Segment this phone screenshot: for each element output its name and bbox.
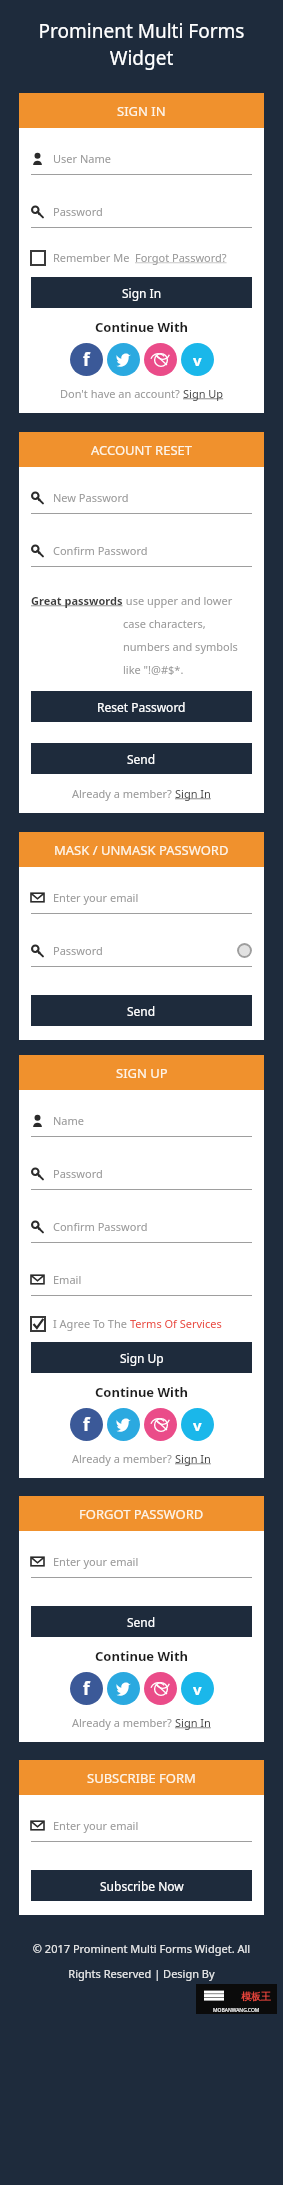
staticText: SUBSCRIBE FORM — [87, 1769, 196, 1787]
staticText: FORGOT PASSWORD — [79, 1505, 204, 1523]
staticText: ACCOUNT RESET — [91, 441, 193, 459]
staticText: f — [83, 1413, 90, 1436]
button[interactable]: Sign In — [175, 1451, 211, 1466]
staticText: f — [83, 1677, 90, 1700]
staticText: SIGN IN — [117, 102, 166, 120]
button[interactable]: Sign Up — [183, 386, 224, 401]
button[interactable]: Password — [31, 1157, 252, 1189]
button[interactable]: Continue with Dribbble — [144, 343, 177, 376]
staticText: Password — [53, 1166, 103, 1181]
button[interactable]: Confirm Password — [31, 534, 252, 566]
button[interactable]: MASK / UNMASK PASSWORD — [19, 832, 264, 867]
staticText: use upper and lower case characters, num… — [123, 593, 252, 677]
staticText: Enter your email — [53, 1554, 139, 1569]
button[interactable]: Continue with Twitter — [107, 1672, 140, 1705]
button[interactable]: Continue with Twitter — [107, 343, 140, 376]
button[interactable]: Password — [31, 934, 252, 966]
button[interactable]: ACCOUNT RESET — [19, 432, 264, 467]
button[interactable]: SIGN IN — [19, 93, 264, 128]
staticText: MASK / UNMASK PASSWORD — [54, 841, 229, 859]
staticText: User Name — [53, 151, 111, 166]
button[interactable]: Enter your email — [31, 1545, 252, 1577]
staticText: Subscribe Now — [100, 1878, 184, 1894]
button[interactable]: Sign In — [175, 1715, 211, 1730]
staticText: Remember Me — [53, 250, 130, 265]
staticText: Send — [127, 1003, 156, 1019]
button[interactable]: Send — [31, 995, 252, 1026]
button[interactable]: Sign In — [31, 277, 252, 308]
staticText: 模板王 — [241, 1990, 271, 2003]
staticText: I Agree To The — [53, 1316, 130, 1331]
staticText: f — [83, 348, 90, 371]
staticText: Email — [53, 1272, 82, 1287]
button[interactable]: Terms Of Services — [130, 1316, 222, 1331]
staticText: Confirm Password — [53, 543, 148, 558]
staticText: v — [193, 1415, 202, 1435]
button[interactable]: SIGN UP — [19, 1055, 264, 1090]
button[interactable]: Continue with Vimeo — [181, 1408, 214, 1441]
staticText: Already a member? — [72, 786, 175, 801]
staticText: v — [193, 1679, 202, 1699]
button[interactable]: Password — [31, 195, 252, 227]
button[interactable]: Continue with Dribbble — [144, 1672, 177, 1705]
staticText: Send — [127, 1614, 156, 1630]
button[interactable]: Subscribe Now — [31, 1870, 252, 1901]
staticText: Already a member? — [72, 1715, 175, 1730]
staticText: New Password — [53, 490, 129, 505]
button[interactable]: Continue with Facebook — [70, 343, 103, 376]
button[interactable]: Continue with Vimeo — [181, 343, 214, 376]
button[interactable]: Sign In — [175, 786, 211, 801]
button[interactable]: Remember Me — [31, 250, 252, 265]
button[interactable]: Send — [31, 1606, 252, 1637]
button[interactable]: Name — [31, 1104, 252, 1136]
button[interactable]: SUBSCRIBE FORM — [19, 1760, 264, 1795]
staticText: Enter your email — [53, 890, 139, 905]
button[interactable]: Continue with Twitter — [107, 1408, 140, 1441]
button[interactable]: Sign Up — [31, 1342, 252, 1373]
staticText: MOBANWANG.COM — [213, 2007, 260, 2014]
button[interactable]: Reset Password — [31, 691, 252, 722]
button[interactable]: Continue with Facebook — [70, 1408, 103, 1441]
staticText: Sign Up — [120, 1350, 164, 1366]
staticText: Continue With — [19, 318, 264, 336]
button[interactable]: Confirm Password — [31, 1210, 252, 1242]
staticText: Name — [53, 1113, 85, 1128]
button[interactable]: New Password — [31, 481, 252, 513]
staticText: Confirm Password — [53, 1219, 148, 1234]
staticText: Reset Password — [97, 699, 186, 715]
button[interactable]: Send — [31, 743, 252, 774]
button[interactable]: Continue with Vimeo — [181, 1672, 214, 1705]
staticText: Great passwords — [31, 593, 123, 608]
button[interactable]: Continue with Dribbble — [144, 1408, 177, 1441]
button[interactable]: Continue with Facebook — [70, 1672, 103, 1705]
staticText: © 2017 Prominent Multi Forms Widget. All… — [16, 1941, 267, 1982]
staticText: Sign In — [122, 285, 162, 301]
staticText: Continue With — [19, 1647, 264, 1665]
staticText: SIGN UP — [116, 1064, 168, 1082]
staticText: Continue With — [19, 1383, 264, 1401]
staticText: Already a member? — [72, 1451, 175, 1466]
button[interactable]: Forgot Password? — [135, 250, 227, 265]
button[interactable]: User Name — [31, 142, 252, 174]
button[interactable]: FORGOT PASSWORD — [19, 1496, 264, 1531]
button[interactable]: I Agree To The — [31, 1316, 252, 1331]
button[interactable]: Email — [31, 1263, 252, 1295]
staticText: Password — [53, 943, 103, 958]
button[interactable]: Toggle password visibility — [237, 943, 252, 958]
button[interactable]: Enter your email — [31, 881, 252, 913]
staticText: Send — [127, 751, 156, 767]
button[interactable]: Enter your email — [31, 1809, 252, 1841]
staticText: Prominent Multi Forms Widget — [24, 18, 259, 71]
staticText: Don't have an account? — [60, 386, 183, 401]
staticText: v — [193, 350, 202, 370]
staticText: Password — [53, 204, 103, 219]
staticText: Enter your email — [53, 1818, 139, 1833]
